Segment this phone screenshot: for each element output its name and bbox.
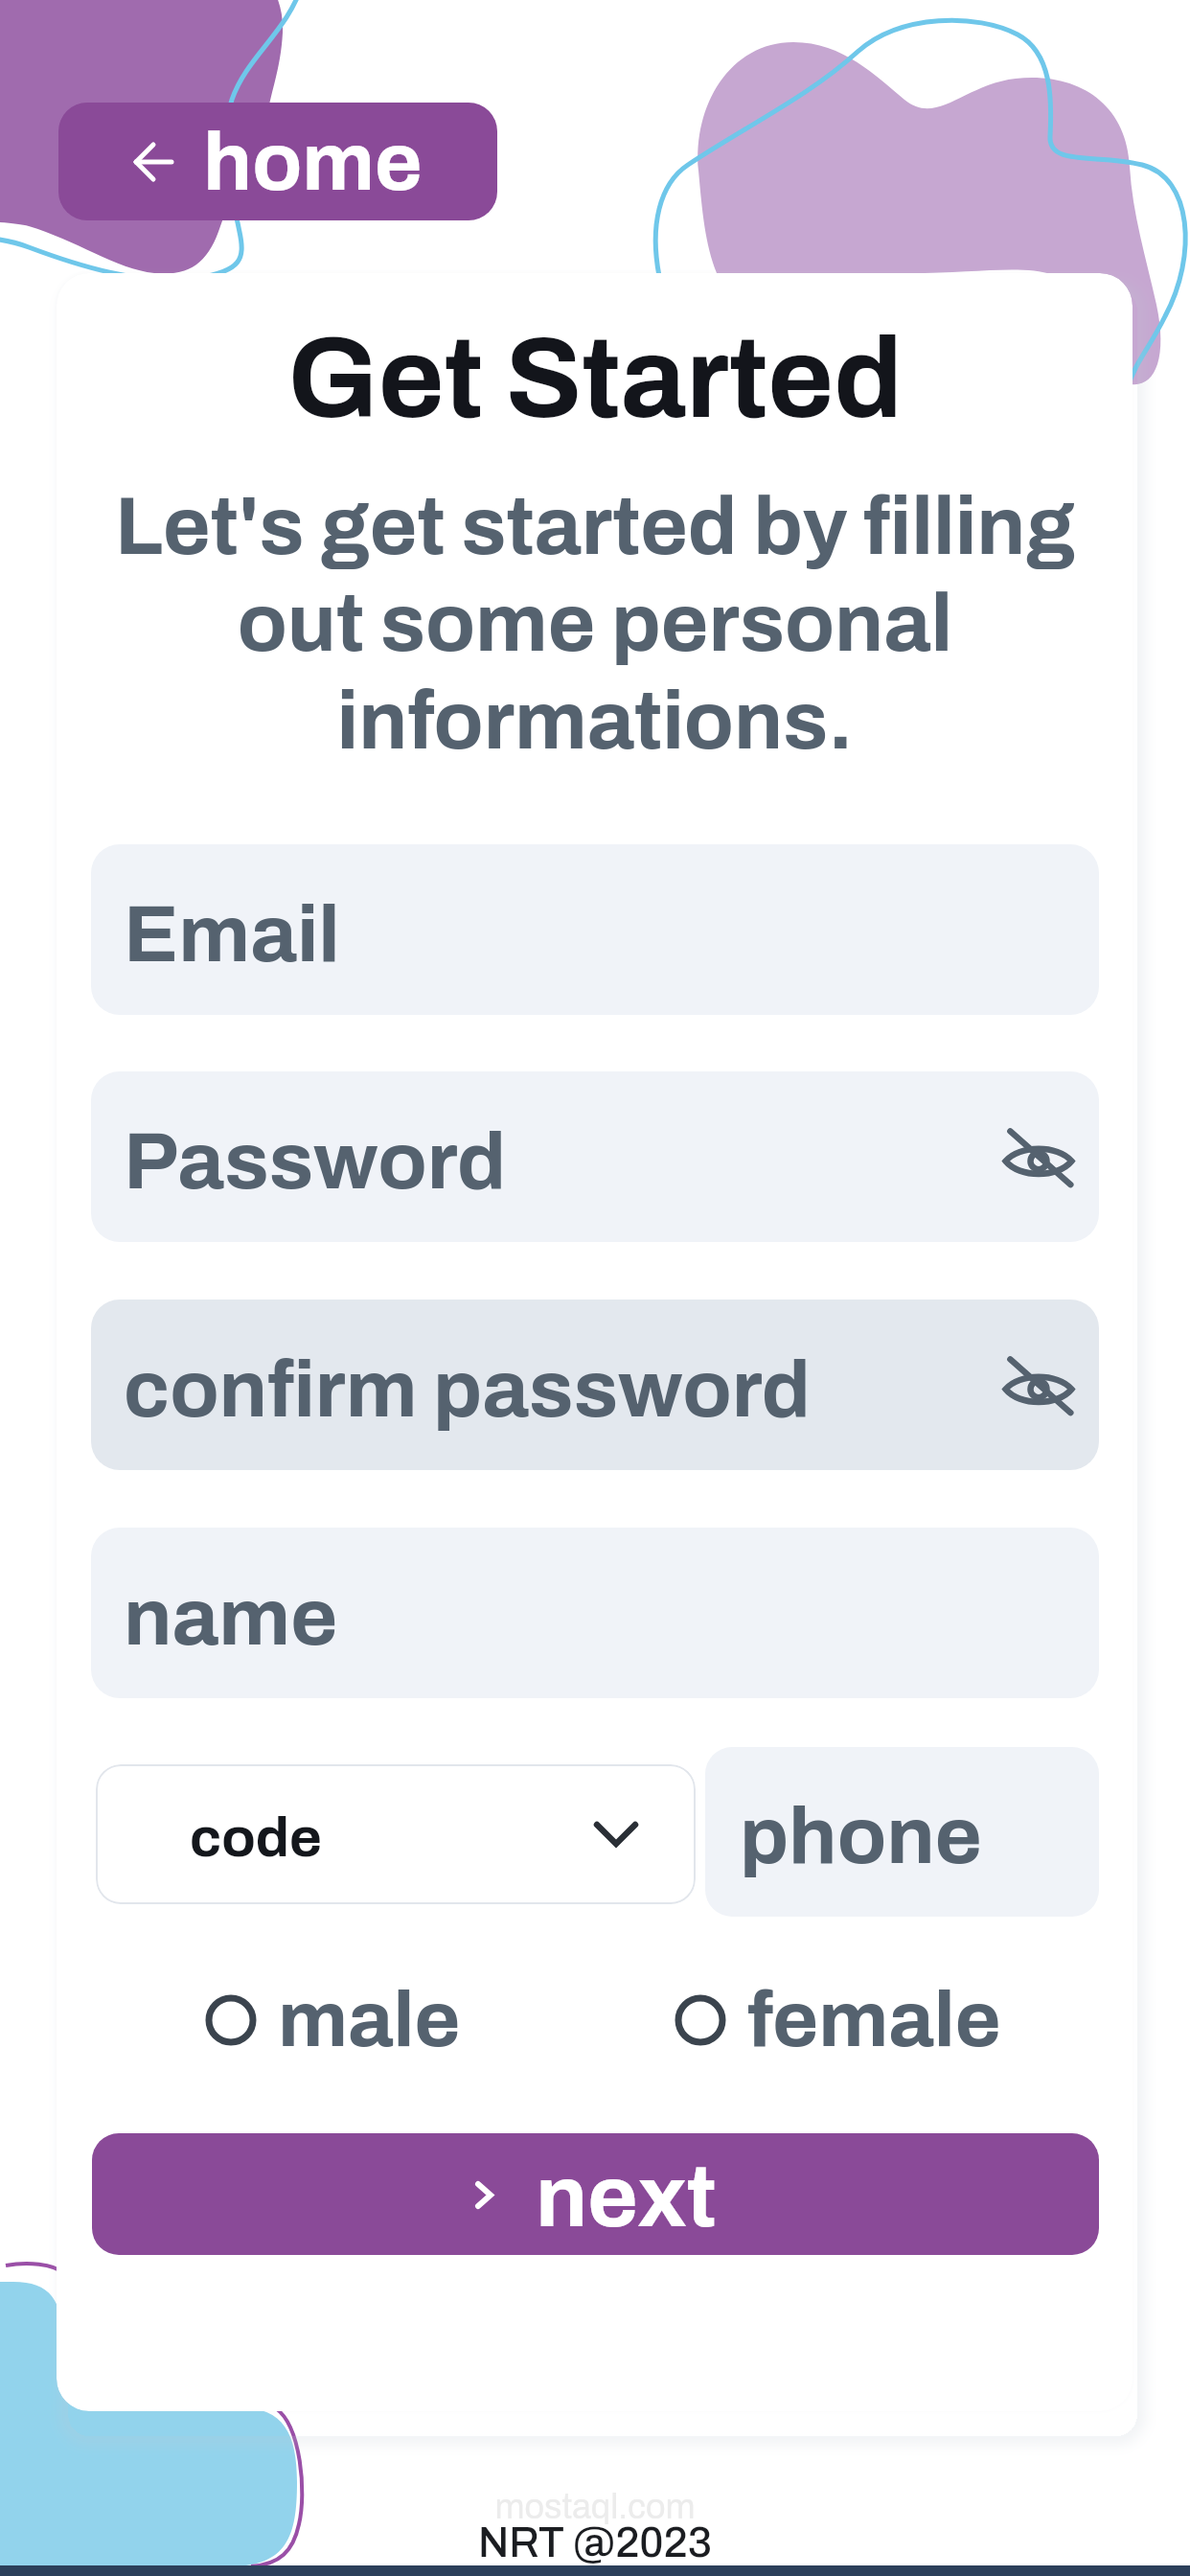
- staticText: next: [536, 2150, 717, 2244]
- staticText: name: [124, 1574, 338, 1661]
- staticText: NRT @2023: [0, 2519, 1190, 2565]
- button[interactable]: male: [199, 1971, 467, 2068]
- staticText: Email: [124, 890, 340, 977]
- button[interactable]: Email: [91, 844, 1099, 1015]
- staticText: Password: [124, 1117, 506, 1205]
- staticText: phone: [740, 1792, 982, 1879]
- button[interactable]: Toggle password visibility: [1003, 1107, 1074, 1207]
- staticText: mostaql.com: [0, 2488, 1190, 2525]
- staticText: home: [203, 118, 423, 206]
- button[interactable]: name: [91, 1528, 1099, 1698]
- button[interactable]: home: [58, 103, 497, 220]
- button[interactable]: confirm password: [91, 1299, 1099, 1470]
- staticText: Get Started: [0, 317, 1190, 440]
- staticText: code: [190, 1807, 322, 1868]
- button[interactable]: next: [92, 2133, 1099, 2255]
- staticText: male: [278, 1977, 461, 2062]
- button[interactable]: phone: [705, 1747, 1099, 1917]
- button[interactable]: Password: [91, 1071, 1099, 1242]
- staticText: female: [747, 1977, 1001, 2062]
- button[interactable]: Toggle password visibility: [1003, 1335, 1074, 1435]
- staticText: confirm password: [124, 1345, 811, 1433]
- button[interactable]: code: [96, 1764, 696, 1904]
- button[interactable]: female: [669, 1971, 1007, 2068]
- staticText: Let's get started by filling out some pe…: [57, 482, 1133, 766]
